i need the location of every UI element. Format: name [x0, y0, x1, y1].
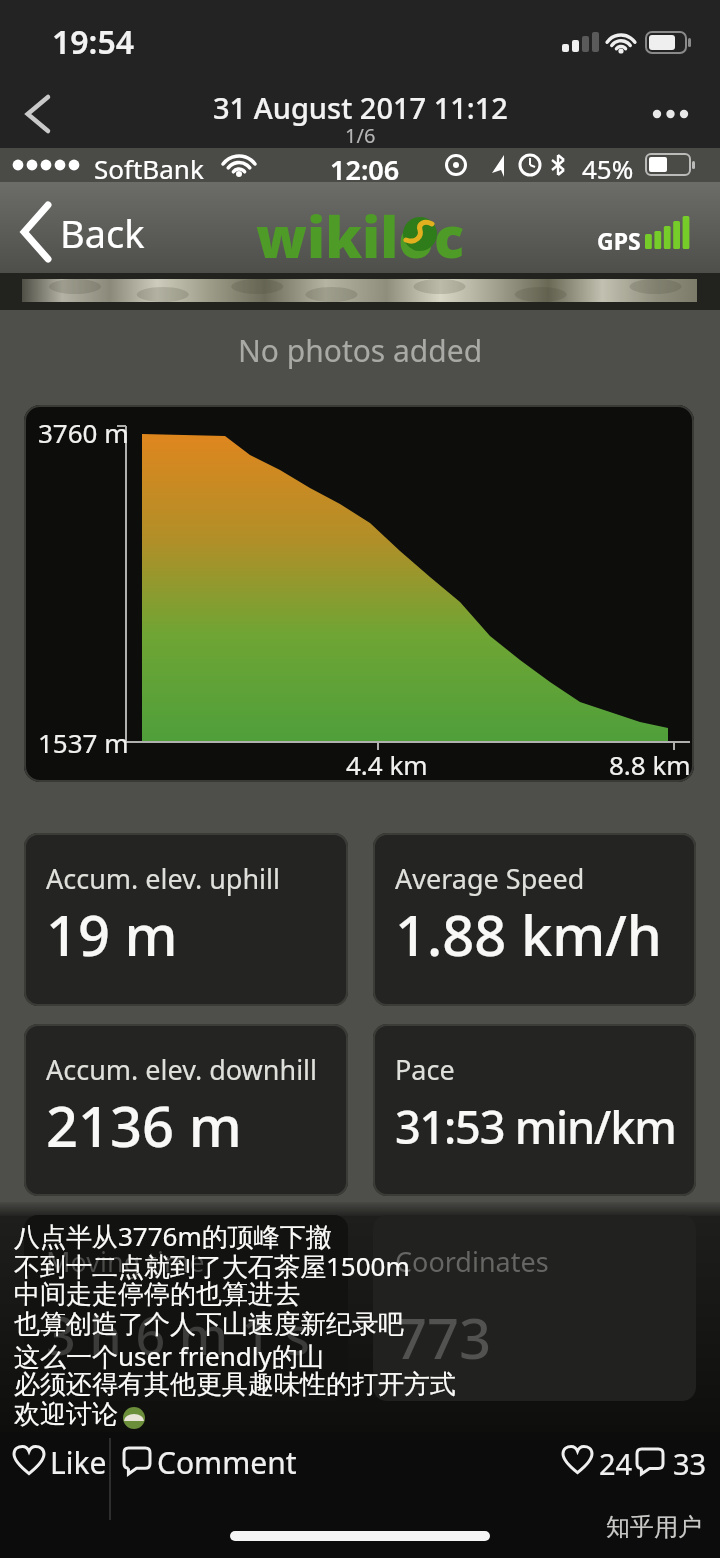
staticText: 必须还得有其他更具趣味性的打开方式 — [14, 1368, 456, 1401]
staticText: Moving time — [46, 1243, 205, 1280]
staticText: 33 — [673, 1444, 707, 1483]
staticText: 24 — [599, 1444, 633, 1483]
button[interactable]: Accum. elev. uphill — [24, 833, 348, 1006]
button[interactable]: Comment — [118, 1436, 278, 1500]
button[interactable]: 24 — [554, 1436, 632, 1500]
staticText: 12:06 — [330, 151, 400, 188]
staticText: 45% — [582, 151, 634, 186]
staticText: Pace — [395, 1051, 455, 1088]
staticText: SoftBank — [94, 151, 204, 186]
button[interactable]: Pace — [373, 1024, 696, 1196]
button[interactable]: Average Speed — [373, 833, 696, 1006]
staticText: 知乎用户 — [606, 1512, 702, 1542]
staticText: 中间走走停停的也算进去 — [14, 1278, 300, 1311]
staticText: 2136 m — [46, 1087, 242, 1163]
staticText: 这么一个user friendly的山 — [14, 1338, 324, 1374]
staticText: Average Speed — [395, 860, 585, 897]
button[interactable] — [12, 88, 62, 140]
staticText: Comment — [157, 1442, 297, 1483]
staticText: 1.88 km/h — [395, 896, 662, 972]
staticText: No photos added — [238, 330, 483, 371]
staticText: Back — [60, 207, 145, 259]
staticText: 1537 m — [38, 725, 129, 760]
staticText: 不到十二点就到了大石茶屋1500m — [14, 1248, 410, 1284]
staticText: 31 August 2017 11:12 — [213, 88, 508, 127]
staticText: 19:54 — [52, 20, 135, 64]
staticText: 31:53 min/km — [395, 1096, 676, 1157]
staticText: 也算创造了个人下山速度新纪录吧 — [14, 1308, 404, 1341]
staticText: wikiloc — [256, 198, 465, 274]
staticText: 八点半从3776m的顶峰下撤 — [14, 1218, 332, 1254]
staticText: Like — [50, 1442, 107, 1483]
staticText: 3 h 6 m 1 s — [46, 1299, 310, 1370]
staticText: 3760 m — [38, 415, 129, 450]
button[interactable]: 33 — [632, 1436, 712, 1500]
staticText: Accum. elev. downhill — [46, 1051, 318, 1088]
button[interactable]: Back — [10, 200, 160, 266]
staticText: Accum. elev. uphill — [46, 860, 281, 897]
staticText: Coordinates — [395, 1243, 549, 1280]
button[interactable]: Accum. elev. downhill — [24, 1024, 348, 1196]
button[interactable] — [652, 108, 696, 120]
staticText: 19 m — [46, 896, 178, 972]
staticText: 1/6 — [345, 122, 376, 149]
staticText: 4.4 km — [346, 747, 428, 782]
staticText: 8.8 km — [609, 747, 691, 782]
staticText: GPS — [597, 225, 641, 256]
staticText: 773 — [395, 1299, 492, 1375]
button[interactable]: Like — [0, 1436, 108, 1500]
staticText: 欢迎讨论 — [14, 1398, 118, 1431]
